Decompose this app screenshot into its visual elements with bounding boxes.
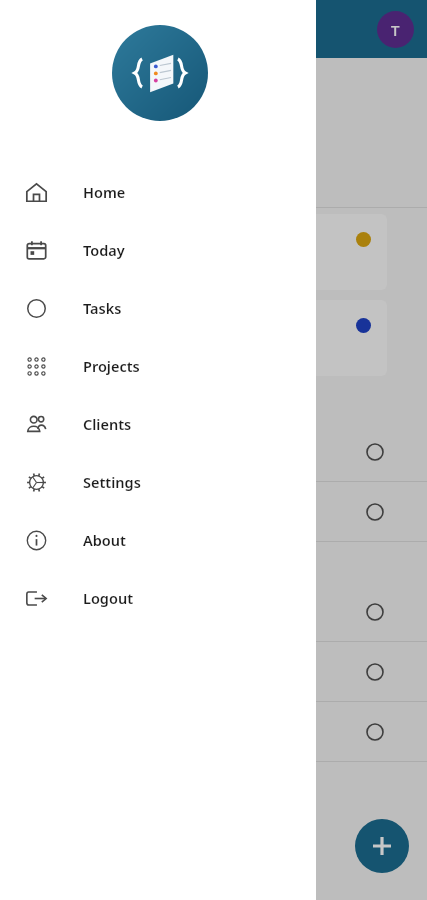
staticText: Today [83,240,125,260]
button[interactable]: About [0,511,316,569]
button[interactable]: Add [355,819,409,873]
staticText: Settings [83,472,141,492]
button[interactable]: Clients [0,395,316,453]
button[interactable] [0,702,427,761]
staticText: Home [83,182,126,202]
button[interactable]: Today [0,221,316,279]
staticText: About [83,530,126,550]
staticText: T [391,20,400,40]
button[interactable] [14,300,387,376]
button[interactable]: Profile [377,11,414,48]
button[interactable] [0,582,427,641]
staticText: Projects [83,356,140,376]
button[interactable]: Tasks [0,279,316,337]
staticText: Tasks [83,298,122,318]
button[interactable] [14,214,387,290]
button[interactable]: Home [0,163,316,221]
staticText: Clients [83,414,132,434]
button[interactable]: Settings [0,453,316,511]
button[interactable] [0,642,427,701]
button[interactable]: Projects [0,337,316,395]
staticText: Here's your daily summary. [16,114,260,139]
button[interactable] [0,482,427,541]
button[interactable] [0,422,427,481]
staticText: Logout [83,588,134,608]
button[interactable]: Logout [0,569,316,627]
